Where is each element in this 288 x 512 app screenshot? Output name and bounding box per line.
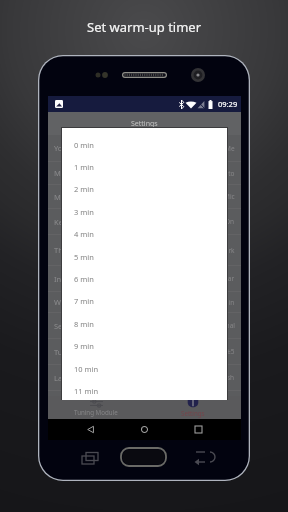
staticText: 2 min — [74, 184, 94, 194]
staticText: Warm-up timer — [54, 297, 108, 307]
staticText: 11 min — [74, 386, 99, 396]
button[interactable]: Warm-up timer — [48, 292, 241, 312]
staticText: Settings — [131, 119, 158, 129]
staticText: 0 min — [74, 140, 94, 150]
staticText: 10 min — [74, 364, 99, 374]
staticText: Sensitivity — [54, 321, 90, 331]
staticText: 1 min — [74, 162, 94, 172]
staticText: 09:29 — [218, 99, 238, 109]
button[interactable]: 10 min — [62, 358, 227, 380]
staticText: Music source — [54, 192, 101, 202]
staticText: 5 min — [217, 298, 235, 307]
staticText: 6 min — [74, 274, 94, 284]
button[interactable]: 0 min — [62, 134, 227, 156]
button[interactable]: 6 min — [62, 268, 227, 290]
button[interactable]: Your name — [48, 135, 241, 161]
staticText: Set warm-up timer — [87, 18, 202, 36]
staticText: Settings — [181, 409, 205, 417]
button[interactable]: 3 min — [62, 201, 227, 223]
button[interactable]: Home — [130, 419, 158, 440]
staticText: Mic — [224, 192, 235, 201]
staticText: 3 min — [74, 207, 94, 217]
button[interactable]: Microphone — [48, 162, 241, 184]
button[interactable]: Back — [76, 419, 104, 440]
staticText: Tuning accuracy — [54, 347, 111, 357]
staticText: Instrument — [54, 274, 94, 284]
button[interactable]: 11 min — [62, 380, 227, 402]
staticText: 8 min — [74, 319, 94, 329]
button[interactable]: 8 min — [62, 313, 227, 335]
staticText: 9 min — [74, 341, 94, 351]
button[interactable]: Tuning Module — [56, 396, 136, 419]
button[interactable]: Sensitivity — [48, 313, 241, 338]
staticText: English — [212, 373, 235, 382]
staticText: Keep screen on — [54, 217, 109, 227]
staticText: Tuning Module — [74, 408, 118, 416]
staticText: Theme — [54, 245, 79, 255]
staticText: 7 min — [74, 296, 94, 306]
staticText: Dark — [220, 246, 235, 255]
button[interactable]: 4 min — [62, 223, 227, 245]
staticText: ±5 — [227, 347, 235, 356]
staticText: Normal — [212, 321, 235, 330]
button[interactable]: Tuning accuracy — [48, 339, 241, 364]
staticText: Auto — [220, 169, 235, 178]
staticText: Guitar — [215, 274, 235, 283]
staticText: Your name — [54, 143, 93, 153]
button[interactable]: Settings — [153, 396, 233, 419]
staticText: Me — [225, 144, 235, 153]
staticText: 5 min — [74, 252, 94, 262]
button[interactable]: 1 min — [62, 156, 227, 178]
staticText: Microphone — [54, 168, 97, 178]
button[interactable]: Language — [48, 365, 241, 390]
button[interactable]: Recents — [184, 419, 212, 440]
staticText: On — [225, 217, 235, 226]
button[interactable]: Keep screen on — [48, 209, 241, 234]
staticText: Language — [54, 373, 90, 383]
button[interactable]: Music source — [48, 185, 241, 208]
button[interactable]: 9 min — [62, 335, 227, 357]
button[interactable]: Instrument — [48, 266, 241, 291]
staticText: 4 min — [74, 229, 94, 239]
button[interactable]: Theme — [48, 235, 241, 265]
button[interactable]: 7 min — [62, 290, 227, 312]
button[interactable]: 2 min — [62, 178, 227, 200]
button[interactable]: 5 min — [62, 246, 227, 268]
